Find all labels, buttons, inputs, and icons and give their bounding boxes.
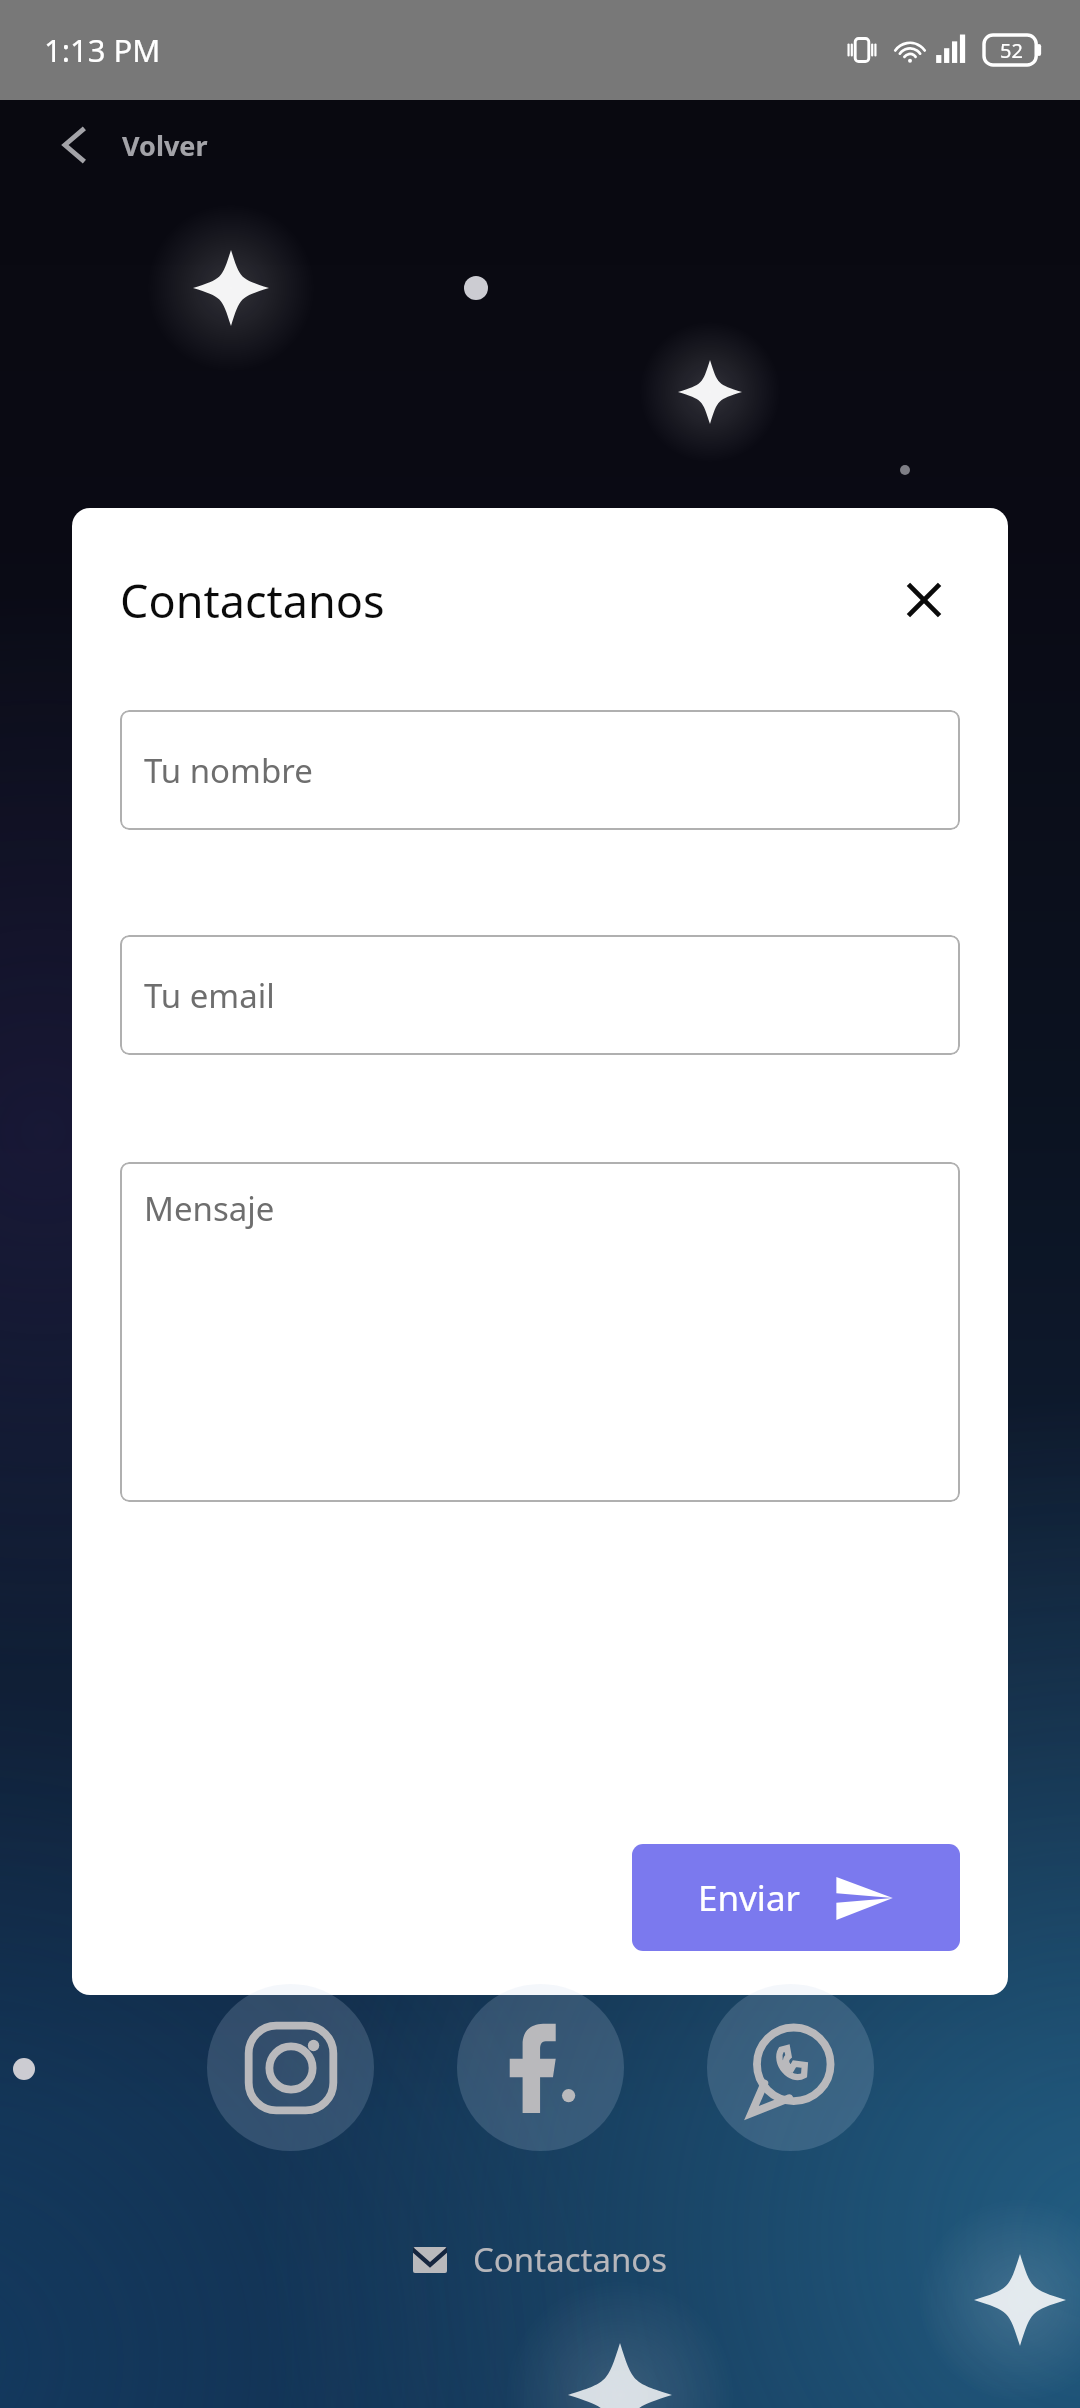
staticText: Volver	[122, 127, 208, 164]
button[interactable]: Instagram	[207, 1984, 374, 2151]
button[interactable]: Tu nombre	[120, 710, 960, 830]
staticText: Contactanos	[473, 2237, 668, 2282]
button[interactable]: Cerrar	[888, 564, 960, 636]
button[interactable]: WhatsApp	[707, 1984, 874, 2151]
staticText: 52	[1000, 37, 1023, 64]
button[interactable]: Enviar	[632, 1844, 960, 1951]
staticText: Mensaje	[144, 1186, 275, 1231]
button[interactable]: Tu email	[120, 935, 960, 1055]
staticText: 1:13 PM	[44, 29, 161, 71]
staticText: Tu nombre	[144, 748, 313, 793]
staticText: Contactanos	[120, 570, 888, 631]
staticText: Enviar	[698, 1874, 800, 1922]
button[interactable]: Mensaje	[120, 1162, 960, 1502]
button[interactable]: Volver	[46, 116, 216, 174]
button[interactable]: Facebook	[457, 1984, 624, 2151]
staticText: Tu email	[144, 973, 275, 1018]
button[interactable]: Contactanos	[403, 2231, 678, 2288]
